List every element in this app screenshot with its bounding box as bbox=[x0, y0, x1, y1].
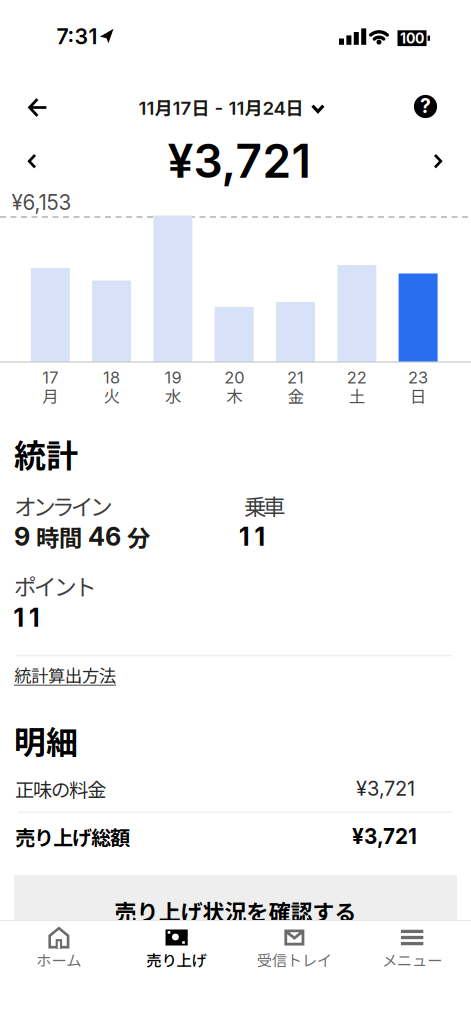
staticText: 日 bbox=[410, 384, 426, 407]
staticText: ¥3,721 bbox=[356, 776, 415, 801]
staticText: 火 bbox=[104, 384, 120, 407]
staticText: 金 bbox=[287, 384, 303, 407]
button[interactable]: 戻る bbox=[18, 87, 58, 127]
button[interactable]: ヘルプ bbox=[414, 95, 437, 118]
button[interactable]: 次の週 bbox=[433, 154, 442, 169]
button[interactable]: 前の週 bbox=[28, 154, 37, 169]
staticText: オンライン bbox=[14, 489, 113, 522]
staticText: 11 bbox=[13, 602, 40, 633]
staticText: 木 bbox=[226, 384, 242, 407]
staticText: 21 bbox=[287, 368, 304, 387]
staticText: ¥3,721 bbox=[167, 133, 310, 189]
button[interactable]: 売り上げ状況を確認する bbox=[14, 875, 457, 931]
staticText: 売り上げ状況を確認する bbox=[114, 895, 356, 927]
staticText: 乗車 bbox=[244, 489, 286, 522]
button[interactable]: 売り上げ bbox=[118, 920, 236, 1024]
staticText: 18 bbox=[103, 368, 120, 387]
staticText: 100 bbox=[400, 30, 424, 47]
staticText: 23 bbox=[408, 368, 428, 387]
staticText: 正味の料金 bbox=[15, 774, 106, 802]
staticText: ホーム bbox=[36, 948, 81, 971]
staticText: ポイント bbox=[14, 569, 97, 602]
staticText: 月 bbox=[42, 384, 58, 407]
staticText: 売り上げ総額 bbox=[15, 822, 130, 851]
button[interactable]: メニュー bbox=[353, 920, 471, 1024]
staticText: 22 bbox=[347, 368, 367, 387]
staticText: 売り上げ bbox=[147, 948, 207, 971]
staticText: ¥3,721 bbox=[352, 824, 417, 849]
staticText: 水 bbox=[165, 384, 181, 407]
staticText: ¥6,153 bbox=[11, 190, 71, 215]
staticText: 11月17日 - 11月24日 bbox=[138, 95, 303, 120]
staticText: 9 時間 46 分 bbox=[14, 520, 150, 553]
button[interactable]: 統計算出方法 bbox=[14, 662, 116, 688]
staticText: メニュー bbox=[382, 948, 442, 971]
staticText: 19 bbox=[164, 368, 181, 387]
staticText: 統計算出方法 bbox=[14, 662, 116, 688]
staticText: 統計 bbox=[14, 430, 78, 477]
staticText: 11 bbox=[239, 521, 265, 552]
staticText: 受信トレイ bbox=[257, 948, 332, 971]
button[interactable]: 受信トレイ bbox=[235, 920, 353, 1024]
staticText: 土 bbox=[349, 384, 365, 407]
staticText: 17 bbox=[42, 368, 58, 387]
button[interactable]: ホーム bbox=[0, 920, 118, 1024]
staticText: 明細 bbox=[14, 717, 78, 763]
staticText: ? bbox=[420, 94, 431, 118]
staticText: 20 bbox=[224, 368, 244, 387]
staticText: 7:31 bbox=[56, 24, 97, 49]
button[interactable]: 11月17日 - 11月24日 bbox=[138, 95, 324, 120]
